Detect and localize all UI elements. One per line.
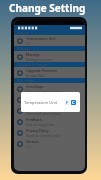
button[interactable]: Version	[14, 138, 85, 149]
staticText: Version	[26, 139, 39, 144]
button[interactable]: Send Apps	[14, 83, 85, 94]
button[interactable]: Rate Us	[14, 94, 85, 105]
staticText: 1.0	[26, 145, 31, 149]
staticText: Setting	[17, 30, 29, 35]
staticText: More Apps	[17, 78, 35, 83]
button[interactable]: Upgrade Premium	[14, 67, 85, 78]
staticText: Read our privacy policy	[26, 134, 61, 138]
staticText: Upgrade Premium	[17, 62, 48, 67]
staticText: Manage	[17, 46, 31, 51]
button[interactable]: C	[71, 100, 76, 105]
staticText: More our Android apps	[26, 90, 61, 94]
staticText: C	[72, 100, 75, 105]
button[interactable]: Share	[14, 105, 85, 116]
staticText: Manage	[26, 52, 40, 57]
staticText: Temperature Unit	[26, 36, 56, 41]
staticText: F	[66, 100, 69, 105]
button[interactable]: Privacy Policy	[14, 127, 85, 138]
staticText: Upgrade Premium	[26, 68, 58, 73]
staticText: °C	[26, 42, 30, 46]
staticText: Share with your friends	[26, 112, 61, 116]
staticText: Feedback	[26, 117, 42, 122]
staticText: Privacy Policy	[26, 128, 49, 133]
button[interactable]: F	[65, 100, 70, 105]
staticText: Temperature Unit	[24, 100, 58, 105]
staticText: Give us suggestion	[26, 123, 55, 127]
button[interactable]: Feedback	[14, 116, 85, 127]
staticText: Remove Ads	[26, 74, 45, 78]
staticText: Manage Location	[26, 58, 52, 62]
button[interactable]: Manage	[14, 51, 85, 62]
button[interactable]: Temperature Unit	[14, 35, 85, 46]
staticText: Rate us on Google Play	[26, 101, 61, 105]
staticText: Send Apps	[26, 84, 44, 89]
staticText: Change Setting	[9, 1, 86, 15]
